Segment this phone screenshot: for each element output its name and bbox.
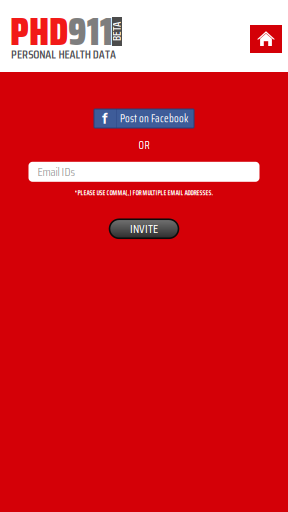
staticText: PHD	[10, 1, 68, 62]
staticText: BETA	[107, 23, 126, 40]
staticText: f	[102, 110, 108, 127]
staticText: Post on Facebook	[120, 110, 188, 127]
button[interactable]: INVITE	[109, 219, 178, 238]
staticText: OR	[138, 137, 149, 154]
staticText: INVITE	[130, 219, 158, 238]
button[interactable]: Home	[250, 25, 282, 53]
button[interactable]: f	[94, 109, 194, 128]
staticText: Email IDs	[37, 162, 75, 181]
staticText: PERSONAL HEALTH DATA	[11, 45, 116, 64]
staticText: 911	[68, 1, 113, 62]
staticText: *PLEASE USE COMMA(,) FOR MULTIPLE EMAIL …	[74, 188, 213, 198]
